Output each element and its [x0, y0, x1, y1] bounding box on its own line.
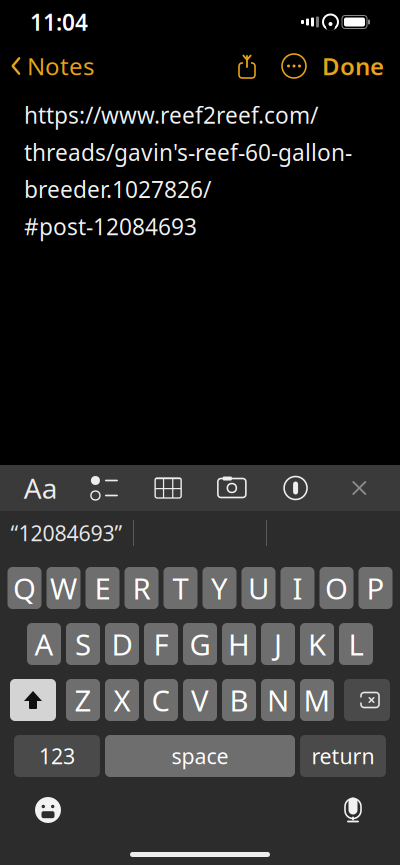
staticText: 11:04: [30, 7, 88, 37]
button[interactable]: Delete: [344, 679, 390, 721]
staticText: 123: [39, 742, 75, 770]
button[interactable]: J: [261, 623, 295, 665]
button[interactable]: V: [183, 679, 217, 721]
button[interactable]: 123: [14, 735, 100, 777]
button[interactable]: “12084693”: [0, 511, 133, 555]
button[interactable]: space: [105, 735, 295, 777]
staticText: O: [325, 568, 348, 607]
button[interactable]: E: [85, 567, 119, 609]
button[interactable]: Shift: [10, 679, 56, 721]
button[interactable]: Q: [7, 567, 41, 609]
button[interactable]: G: [183, 623, 217, 665]
staticText: E: [94, 568, 110, 607]
button[interactable]: Done: [322, 42, 400, 90]
staticText: P: [366, 568, 384, 607]
staticText: T: [172, 568, 188, 607]
staticText: G: [189, 624, 210, 663]
staticText: Z: [74, 680, 91, 719]
button[interactable]: M: [300, 679, 334, 721]
staticText: “12084693”: [10, 519, 122, 547]
staticText: space: [171, 742, 228, 770]
button[interactable]: A: [27, 623, 61, 665]
button[interactable]: More: [266, 46, 322, 86]
button[interactable]: I: [280, 567, 314, 609]
staticText: Notes: [27, 50, 94, 82]
staticText: N: [267, 680, 289, 719]
staticText: M: [303, 680, 330, 719]
button[interactable]: Emoji: [25, 787, 71, 833]
button[interactable]: B: [222, 679, 256, 721]
staticText: https://www.reef2reef.com/threads/gavin'…: [24, 100, 352, 241]
staticText: R: [132, 568, 150, 607]
staticText: D: [111, 624, 132, 663]
staticText: Aa: [24, 469, 58, 507]
staticText: F: [153, 624, 168, 663]
button[interactable]: F: [144, 623, 178, 665]
staticText: U: [248, 568, 269, 607]
button[interactable]: H: [222, 623, 256, 665]
staticText: L: [348, 624, 363, 663]
button[interactable]: Z: [66, 679, 100, 721]
staticText: Q: [13, 568, 36, 607]
staticText: Y: [211, 568, 228, 607]
button[interactable]: Dictate: [331, 785, 375, 835]
button[interactable]: L: [339, 623, 373, 665]
button[interactable]: Close: [336, 466, 382, 510]
staticText: K: [308, 624, 326, 663]
staticText: H: [228, 624, 250, 663]
staticText: return: [311, 742, 374, 770]
button[interactable]: Checklist: [81, 466, 127, 510]
staticText: I: [292, 568, 302, 607]
button[interactable]: K: [300, 623, 334, 665]
button[interactable]: W: [46, 567, 80, 609]
button[interactable]: R: [124, 567, 158, 609]
staticText: B: [229, 680, 248, 719]
staticText: A: [34, 624, 53, 663]
button[interactable]: P: [358, 567, 392, 609]
button[interactable]: Notes: [0, 42, 94, 90]
button[interactable]: T: [163, 567, 197, 609]
button[interactable]: Camera: [209, 466, 255, 510]
button[interactable]: Y: [202, 567, 236, 609]
staticText: Done: [322, 50, 384, 82]
staticText: W: [50, 568, 77, 607]
button[interactable]: N: [261, 679, 295, 721]
button[interactable]: S: [66, 623, 100, 665]
button[interactable]: Table: [145, 466, 191, 510]
staticText: J: [274, 624, 282, 663]
button[interactable]: D: [105, 623, 139, 665]
button[interactable]: U: [241, 567, 275, 609]
staticText: X: [113, 680, 130, 719]
button[interactable]: X: [105, 679, 139, 721]
staticText: V: [191, 680, 209, 719]
button[interactable]: C: [144, 679, 178, 721]
button[interactable]: O: [319, 567, 353, 609]
staticText: C: [151, 680, 170, 719]
button[interactable]: Markup: [273, 466, 319, 510]
button[interactable]: Share: [228, 45, 266, 87]
button[interactable]: return: [300, 735, 386, 777]
staticText: S: [75, 624, 91, 663]
button[interactable]: Format: [18, 466, 64, 510]
